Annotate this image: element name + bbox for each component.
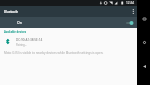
staticText: DC:90:A1:38:5E:14 [16,38,43,42]
button[interactable]: Back [139,61,149,71]
staticText: 12:34 [126,1,135,5]
button[interactable]: DC:90:A1:38:5E:14 [0,38,137,47]
button[interactable]: More options [127,7,137,17]
staticText: Bluetooth [4,10,19,14]
button[interactable]: Recent apps [139,14,149,24]
button[interactable]: Home [139,37,149,47]
staticText: On [17,20,22,25]
button[interactable]: On [0,17,137,28]
staticText: Available devices [4,30,27,34]
staticText: Pairing… [16,43,27,47]
staticText: Moto G (5) is visible to nearby devices … [4,51,104,55]
